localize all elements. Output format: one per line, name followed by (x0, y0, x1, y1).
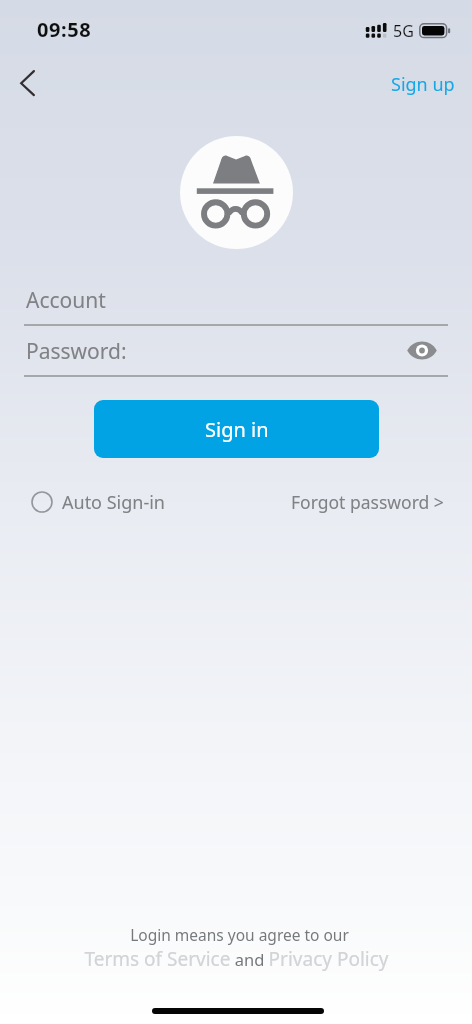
button[interactable]: Terms of Service and Privacy Policy (84, 946, 389, 972)
staticText: Login means you agree to our (130, 924, 349, 945)
staticText: Account (26, 286, 106, 315)
button[interactable]: Forgot password > (281, 487, 454, 517)
button[interactable]: Auto Sign-in (31, 487, 165, 517)
button[interactable]: Account (24, 284, 448, 322)
staticText: Sign up (391, 72, 455, 97)
button[interactable]: Back (3, 61, 51, 109)
staticText: 5G (393, 20, 414, 42)
staticText: Forgot password > (291, 490, 444, 514)
staticText: Terms of Service and Privacy Policy (84, 946, 389, 972)
staticText: Password: (26, 337, 127, 366)
button[interactable]: Password: (24, 335, 448, 373)
staticText: Sign in (205, 416, 269, 443)
button[interactable]: Sign in (94, 400, 379, 458)
button[interactable]: Sign up (371, 62, 472, 107)
staticText: Auto Sign-in (62, 490, 165, 515)
staticText: 09:58 (37, 16, 92, 43)
button[interactable]: Show password (400, 329, 443, 371)
